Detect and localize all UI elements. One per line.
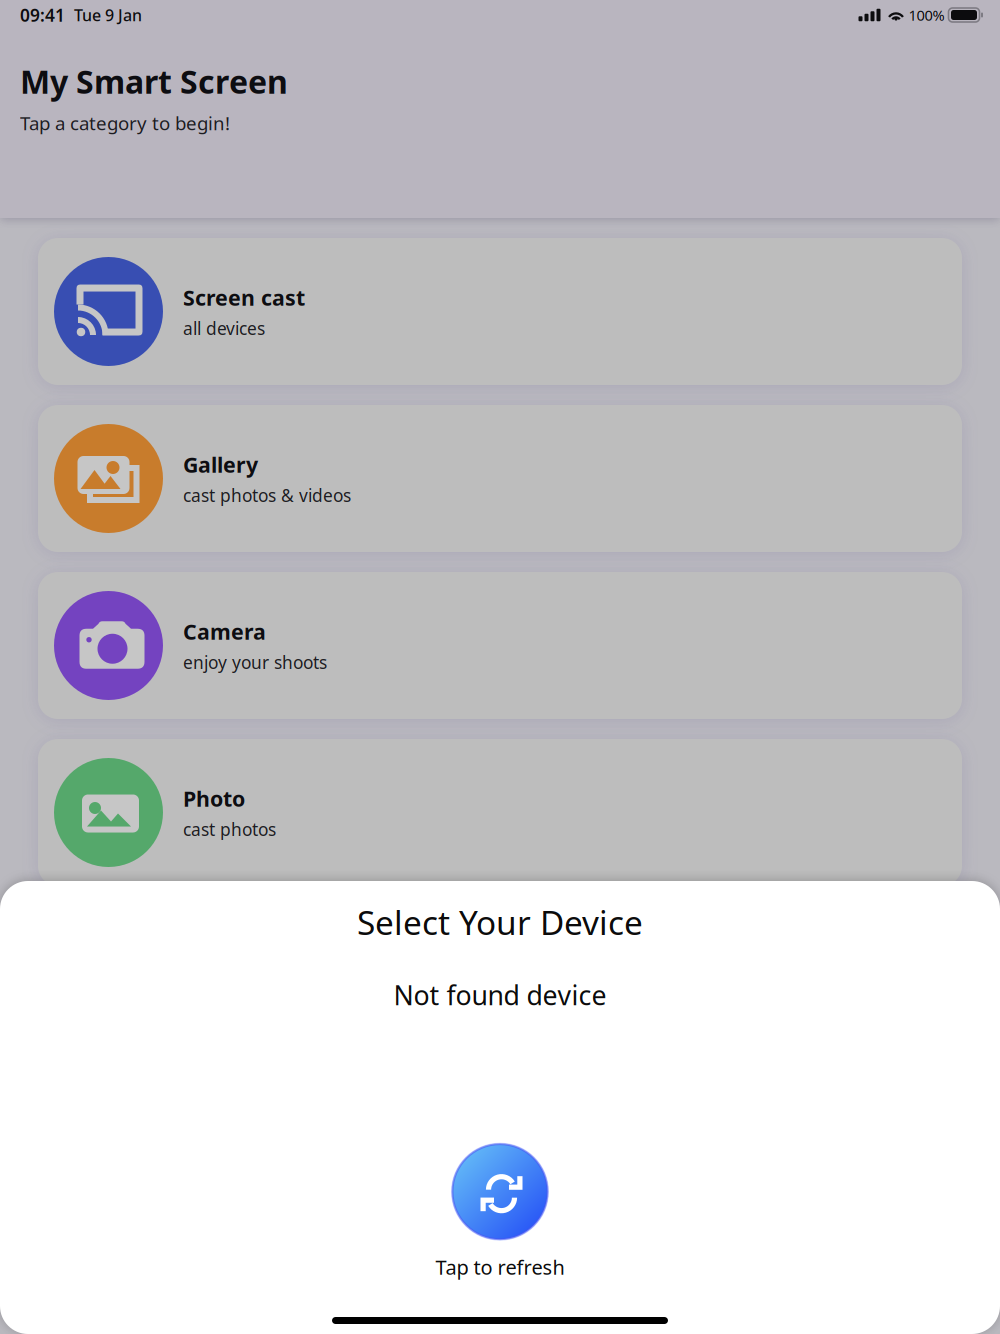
button[interactable]: Gallery	[38, 405, 962, 552]
staticText: Tap to refresh	[435, 1254, 564, 1280]
staticText: enjoy your shoots	[183, 651, 327, 674]
button[interactable]: Screen cast	[38, 238, 962, 385]
staticText: all devices	[183, 317, 265, 340]
staticText: Screen cast	[183, 283, 305, 312]
staticText: My Smart Screen	[20, 60, 288, 102]
staticText: 100%	[908, 5, 944, 25]
staticText: cast photos & videos	[183, 484, 351, 507]
button[interactable]: Photo	[38, 739, 962, 886]
staticText: cast photos	[183, 818, 276, 841]
staticText: 09:41	[20, 3, 65, 26]
staticText: Select Your Device	[357, 900, 643, 944]
staticText: Tue 9 Jan	[74, 4, 142, 26]
staticText: Not found device	[393, 977, 606, 1013]
staticText: Gallery	[183, 450, 258, 479]
staticText: Tap a category to begin!	[20, 110, 230, 135]
button[interactable]: Camera	[38, 572, 962, 719]
button[interactable]: Tap to refresh	[435, 1143, 564, 1282]
staticText: Camera	[183, 617, 266, 646]
staticText: Photo	[183, 784, 245, 813]
